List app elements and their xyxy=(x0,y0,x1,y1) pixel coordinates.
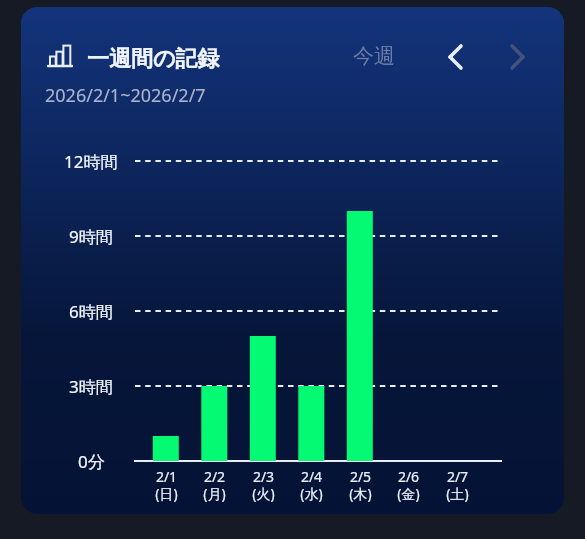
staticText: 2/2 (月) xyxy=(203,467,226,503)
staticText: 2/6 (金) xyxy=(397,467,420,503)
staticText: 2/7 (土) xyxy=(446,467,469,503)
button[interactable]: 今週 xyxy=(344,42,404,70)
button[interactable] xyxy=(503,43,531,71)
staticText: 0分 xyxy=(78,450,105,473)
staticText: 2/3 (火) xyxy=(252,467,275,503)
staticText: 今週 xyxy=(353,43,395,69)
staticText: 12時間 xyxy=(64,150,118,173)
staticText: 2/4 (水) xyxy=(300,467,323,503)
button[interactable] xyxy=(442,43,470,71)
staticText: 9時間 xyxy=(69,225,113,248)
staticText: 2026/2/1~2026/2/7 xyxy=(45,83,206,107)
staticText: 3時間 xyxy=(69,375,113,398)
staticText: 一週間の記録 xyxy=(87,45,220,71)
staticText: 6時間 xyxy=(69,300,113,323)
staticText: 2/1 (日) xyxy=(155,467,178,503)
staticText: 2/5 (木) xyxy=(349,467,372,503)
